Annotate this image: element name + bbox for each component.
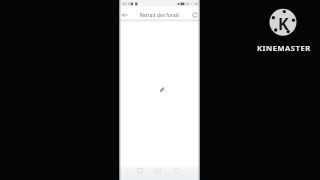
button[interactable]: Back xyxy=(132,166,148,180)
button[interactable]: Refresh xyxy=(189,10,200,20)
staticText: K xyxy=(278,13,289,35)
button[interactable]: Recent apps xyxy=(169,166,185,180)
button[interactable]: Back xyxy=(119,10,131,20)
button[interactable]: Home xyxy=(150,166,166,180)
staticText: KINEMASTER xyxy=(257,43,311,53)
staticText: Retrait des fonds xyxy=(140,12,180,18)
